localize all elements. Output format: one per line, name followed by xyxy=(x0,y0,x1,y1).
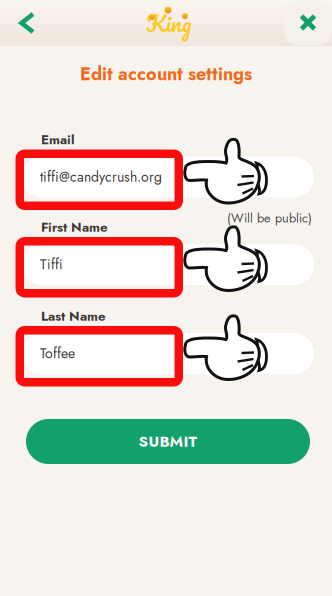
staticText: Tiffi xyxy=(40,254,63,275)
button[interactable]: Back xyxy=(0,0,54,46)
staticText: tiffi@candycrush.org xyxy=(40,167,162,187)
staticText: Email xyxy=(41,130,75,149)
staticText: Edit account settings xyxy=(80,61,252,87)
staticText: First Name xyxy=(41,217,108,237)
staticText: King xyxy=(146,4,192,42)
staticText: (Will be public) xyxy=(227,209,312,227)
staticText: Last Name xyxy=(41,306,106,326)
button[interactable]: Close xyxy=(284,0,332,45)
button[interactable]: SUBMIT xyxy=(26,419,310,464)
staticText: SUBMIT xyxy=(138,430,197,453)
staticText: Toffee xyxy=(40,343,75,364)
